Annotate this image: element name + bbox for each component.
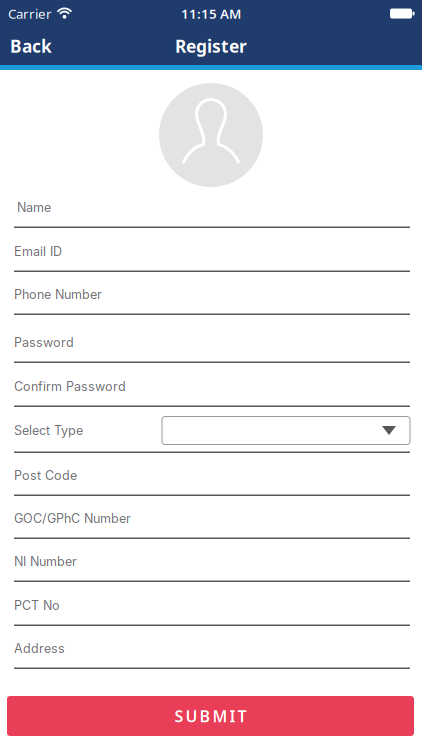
button[interactable]: Email ID	[0, 228, 422, 272]
button[interactable]: Post Code	[0, 453, 422, 496]
staticText: NI Number	[14, 554, 77, 569]
button[interactable]: Address	[0, 626, 422, 669]
staticText: Phone Number	[14, 287, 102, 302]
button[interactable]: SUBMIT	[7, 696, 414, 736]
staticText: SUBMIT	[174, 705, 246, 727]
staticText: Password	[14, 335, 74, 350]
staticText: Confirm Password	[14, 379, 126, 394]
staticText: Back	[10, 34, 52, 57]
staticText: 11:15 AM	[181, 5, 241, 22]
staticText: PCT No	[14, 598, 60, 613]
button[interactable]: Phone Number	[0, 272, 422, 315]
button[interactable]: Password	[0, 315, 422, 363]
staticText: Email ID	[14, 244, 62, 259]
staticText: Post Code	[14, 468, 77, 483]
button[interactable]: PCT No	[0, 582, 422, 626]
button[interactable]: Name	[0, 187, 422, 228]
button[interactable]	[159, 83, 263, 187]
staticText: GOC/GPhC Number	[14, 511, 131, 526]
button[interactable]: Confirm Password	[0, 363, 422, 407]
button[interactable]: GOC/GPhC Number	[0, 496, 422, 539]
staticText: Address	[14, 641, 65, 656]
staticText: Select Type	[14, 423, 83, 438]
button[interactable]	[162, 416, 410, 444]
button[interactable]: Back	[0, 34, 52, 57]
button[interactable]: NI Number	[0, 539, 422, 582]
staticText: Register	[175, 34, 247, 57]
staticText: Carrier	[8, 5, 52, 22]
staticText: Name	[17, 200, 51, 215]
